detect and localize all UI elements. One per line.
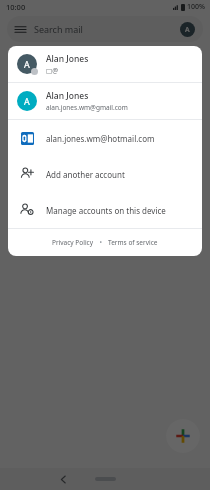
button[interactable]: Privacy Policy xyxy=(50,236,96,249)
staticText: Privacy Policy xyxy=(52,238,94,247)
button[interactable]: Account xyxy=(180,22,195,37)
button[interactable]: Terms of service xyxy=(106,236,160,249)
staticText: A xyxy=(24,95,30,107)
staticText: □@ xyxy=(46,66,58,75)
button[interactable]: Manage accounts on this device xyxy=(8,192,202,228)
staticText: Terms of service xyxy=(108,238,158,247)
staticText: Manage accounts on this device xyxy=(46,205,166,216)
button[interactable]: Compose xyxy=(166,419,200,453)
staticText: Add another account xyxy=(46,169,125,180)
button[interactable]: Search mail xyxy=(7,16,203,42)
button[interactable]: Add another account xyxy=(8,156,202,192)
staticText: Alan Jones xyxy=(46,53,89,65)
staticText: • xyxy=(96,238,106,247)
staticText: Search mail xyxy=(34,23,180,35)
staticText: 100% xyxy=(187,2,205,12)
staticText: A xyxy=(24,58,30,70)
button[interactable]: A xyxy=(8,83,202,119)
staticText: alan.jones.wm@gmail.com xyxy=(46,103,128,112)
button[interactable]: A xyxy=(8,46,202,82)
button[interactable]: alan.jones.wm@hotmail.com xyxy=(8,120,202,156)
staticText: 10:00 xyxy=(6,2,26,12)
button[interactable]: Back xyxy=(60,476,67,483)
staticText: alan.jones.wm@hotmail.com xyxy=(46,133,155,144)
staticText: A xyxy=(185,25,190,35)
staticText: Alan Jones xyxy=(46,90,89,102)
